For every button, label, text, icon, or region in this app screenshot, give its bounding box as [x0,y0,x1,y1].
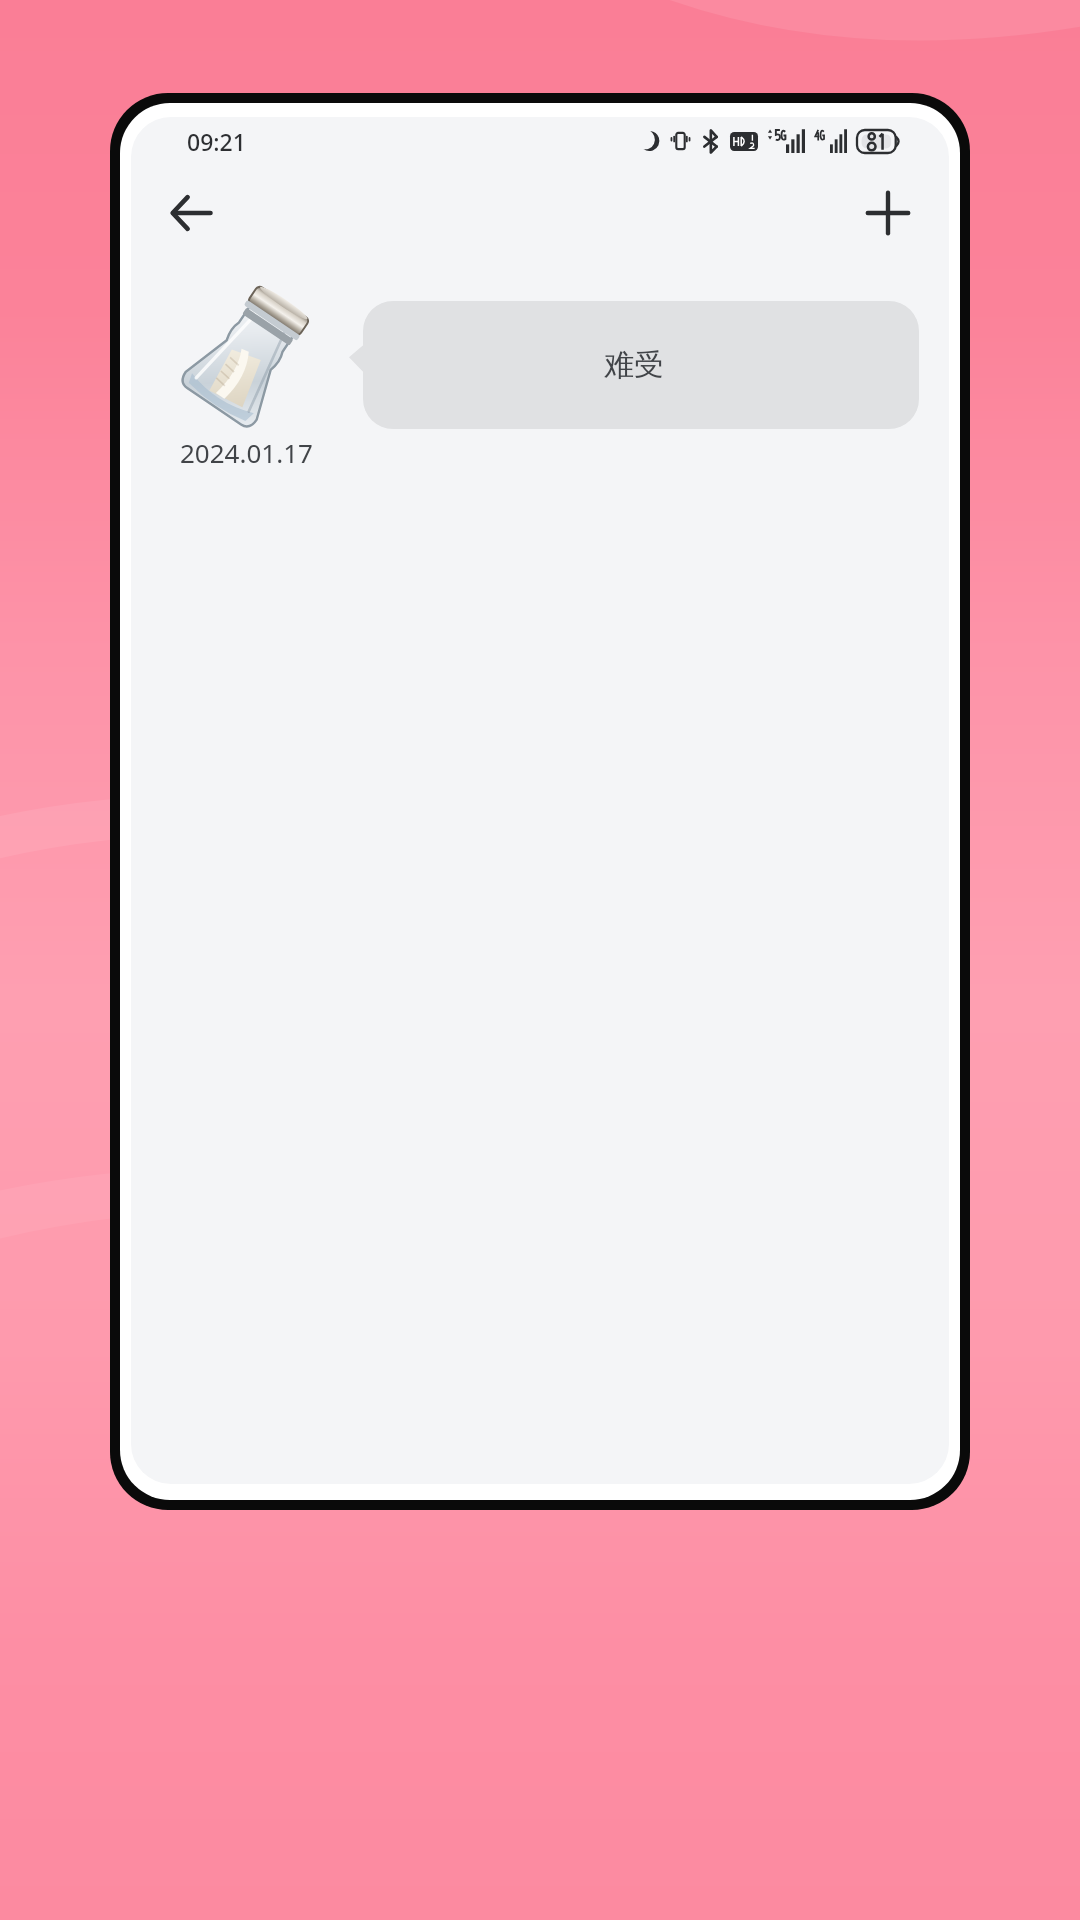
button[interactable]: 2024.01.17 [161,281,331,470]
button[interactable]: Back [153,174,231,252]
button[interactable]: 难受 [349,301,919,429]
staticText: 09:21 [187,126,246,157]
staticText: 2024.01.17 [180,435,313,470]
staticText: 难受 [604,346,664,384]
button[interactable]: Add [849,174,927,252]
